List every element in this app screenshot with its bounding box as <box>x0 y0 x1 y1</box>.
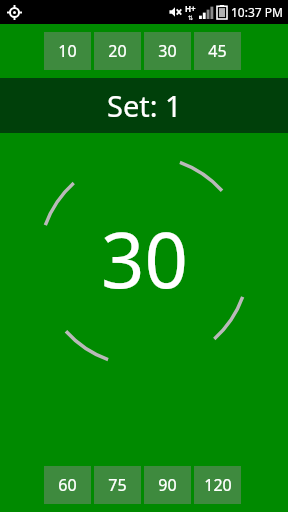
staticText: 30 <box>158 40 177 62</box>
staticText: 75 <box>108 474 127 496</box>
staticText: 60 <box>58 474 77 496</box>
button[interactable]: 10 <box>44 32 91 70</box>
staticText: ⇅ <box>188 14 194 21</box>
button[interactable]: 120 <box>194 466 241 504</box>
button[interactable]: 20 <box>94 32 141 70</box>
staticText: 45 <box>208 40 227 62</box>
button[interactable]: 60 <box>44 466 91 504</box>
staticText: H+ <box>185 3 196 14</box>
staticText: 20 <box>108 40 127 62</box>
staticText: 30 <box>101 207 188 311</box>
staticText: 10:37 PM <box>231 4 283 20</box>
button[interactable]: 30 <box>144 32 191 70</box>
other: Location <box>7 5 22 20</box>
staticText: 10 <box>58 40 77 62</box>
staticText: 120 <box>204 474 232 496</box>
button[interactable]: 90 <box>144 466 191 504</box>
staticText: Set: 1 <box>107 86 182 125</box>
staticText: 90 <box>158 474 177 496</box>
button[interactable]: 30 <box>0 133 288 466</box>
button[interactable]: 75 <box>94 466 141 504</box>
button[interactable]: 45 <box>194 32 241 70</box>
